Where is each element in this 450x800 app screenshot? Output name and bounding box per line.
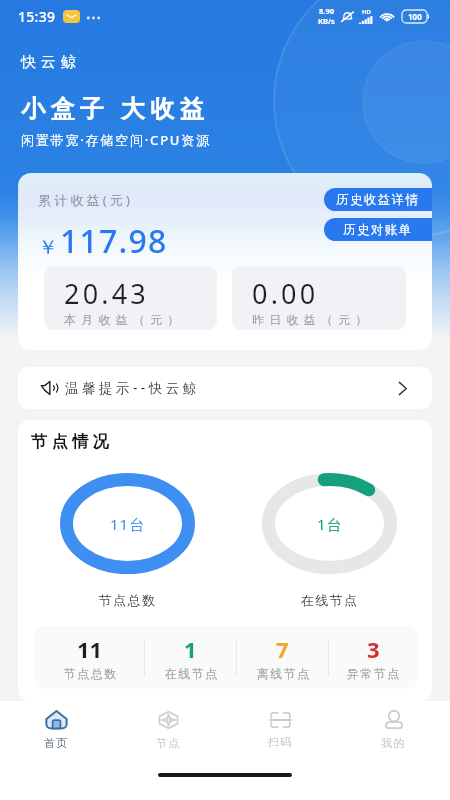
staticText: 我的 — [381, 736, 406, 750]
staticText: 温馨提示--快云鲸 — [65, 379, 200, 397]
button[interactable]: 7 — [237, 634, 328, 681]
button[interactable]: 0.00 — [232, 266, 406, 330]
staticText: 100 — [408, 11, 422, 22]
staticText: 累计收益(元) — [38, 191, 134, 209]
staticText: 15:39 — [18, 7, 56, 26]
staticText: 20.43 — [64, 275, 150, 312]
staticText: 节点总数 — [63, 666, 117, 681]
button[interactable]: 扫码 — [224, 701, 337, 759]
button[interactable]: 温馨提示--快云鲸 — [18, 367, 432, 409]
button[interactable]: 1台 — [228, 473, 430, 608]
button[interactable]: 历史对账单 — [324, 218, 432, 241]
staticText: 历史收益详情 — [336, 192, 420, 208]
staticText: 1 — [184, 634, 197, 664]
button[interactable]: 1 — [145, 634, 236, 681]
button[interactable]: 首页 — [0, 701, 112, 759]
staticText: 闲置带宽·存储空间·CPU资源 — [21, 131, 211, 149]
staticText: 异常节点 — [346, 666, 400, 681]
staticText: 节点 — [156, 736, 181, 750]
button[interactable]: 我的 — [337, 701, 450, 759]
other: 我的 — [383, 711, 405, 729]
staticText: 117.98 — [60, 219, 168, 263]
button[interactable]: 20.43 — [44, 266, 217, 330]
staticText: 11台 — [110, 514, 146, 534]
staticText: HD — [362, 8, 371, 16]
staticText: 3 — [367, 634, 380, 664]
button[interactable]: 节点 — [112, 701, 224, 759]
button[interactable]: 11台 — [26, 473, 228, 608]
staticText: KB/s — [318, 16, 335, 26]
button[interactable]: 历史收益详情 — [324, 188, 432, 211]
staticText: 快云鲸 — [21, 53, 81, 72]
staticText: 节点总数 — [98, 592, 156, 608]
staticText: 历史对账单 — [343, 222, 413, 238]
staticText: 1台 — [317, 514, 343, 534]
staticText: 首页 — [44, 736, 69, 750]
staticText: 11 — [77, 634, 103, 664]
other: 扫码 — [270, 712, 291, 728]
staticText: 8.90 — [319, 6, 334, 16]
staticText: ￥ — [38, 235, 58, 260]
staticText: 小盒子 大收益 — [21, 91, 210, 124]
staticText: 离线节点 — [256, 666, 310, 681]
staticText: 昨日收益（元） — [252, 312, 373, 327]
button[interactable]: 11 — [35, 634, 144, 681]
staticText: 扫码 — [268, 735, 293, 749]
staticText: 0.00 — [252, 275, 319, 312]
staticText: 节点情况 — [31, 432, 114, 452]
button[interactable]: 3 — [329, 634, 417, 681]
staticText: 在线节点 — [164, 666, 218, 681]
staticText: 本月收益（元） — [64, 312, 185, 327]
staticText: 7 — [276, 634, 289, 664]
staticText: 在线节点 — [300, 592, 358, 608]
other: 节点 — [158, 711, 179, 729]
